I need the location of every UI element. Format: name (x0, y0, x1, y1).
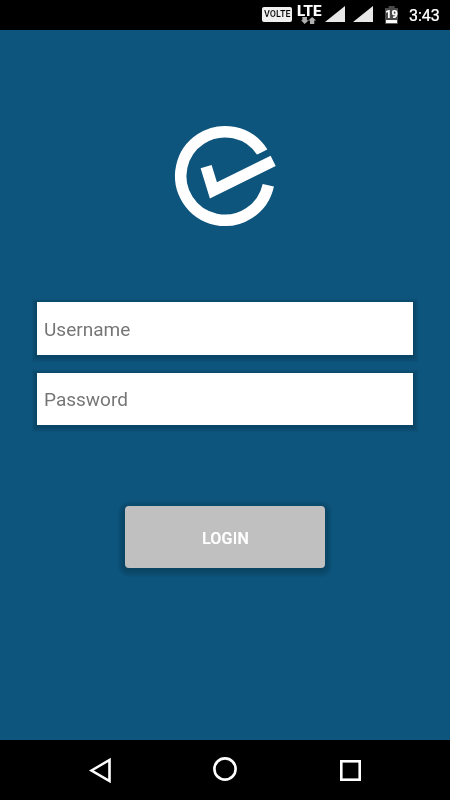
staticText: LOGIN (202, 529, 249, 548)
button[interactable]: Home (201, 745, 249, 793)
staticText: LTE (297, 2, 322, 20)
button[interactable]: Username (37, 302, 413, 355)
button[interactable]: LOGIN (125, 506, 325, 568)
button[interactable]: Password (37, 373, 413, 425)
button[interactable]: Back (76, 746, 124, 794)
staticText: 19 (385, 8, 398, 21)
button[interactable]: Recent apps (326, 746, 374, 794)
staticText: VOLTE (264, 9, 291, 20)
staticText: Username (44, 318, 131, 340)
staticText: Password (44, 388, 128, 410)
staticText: 3:43 (409, 6, 440, 25)
